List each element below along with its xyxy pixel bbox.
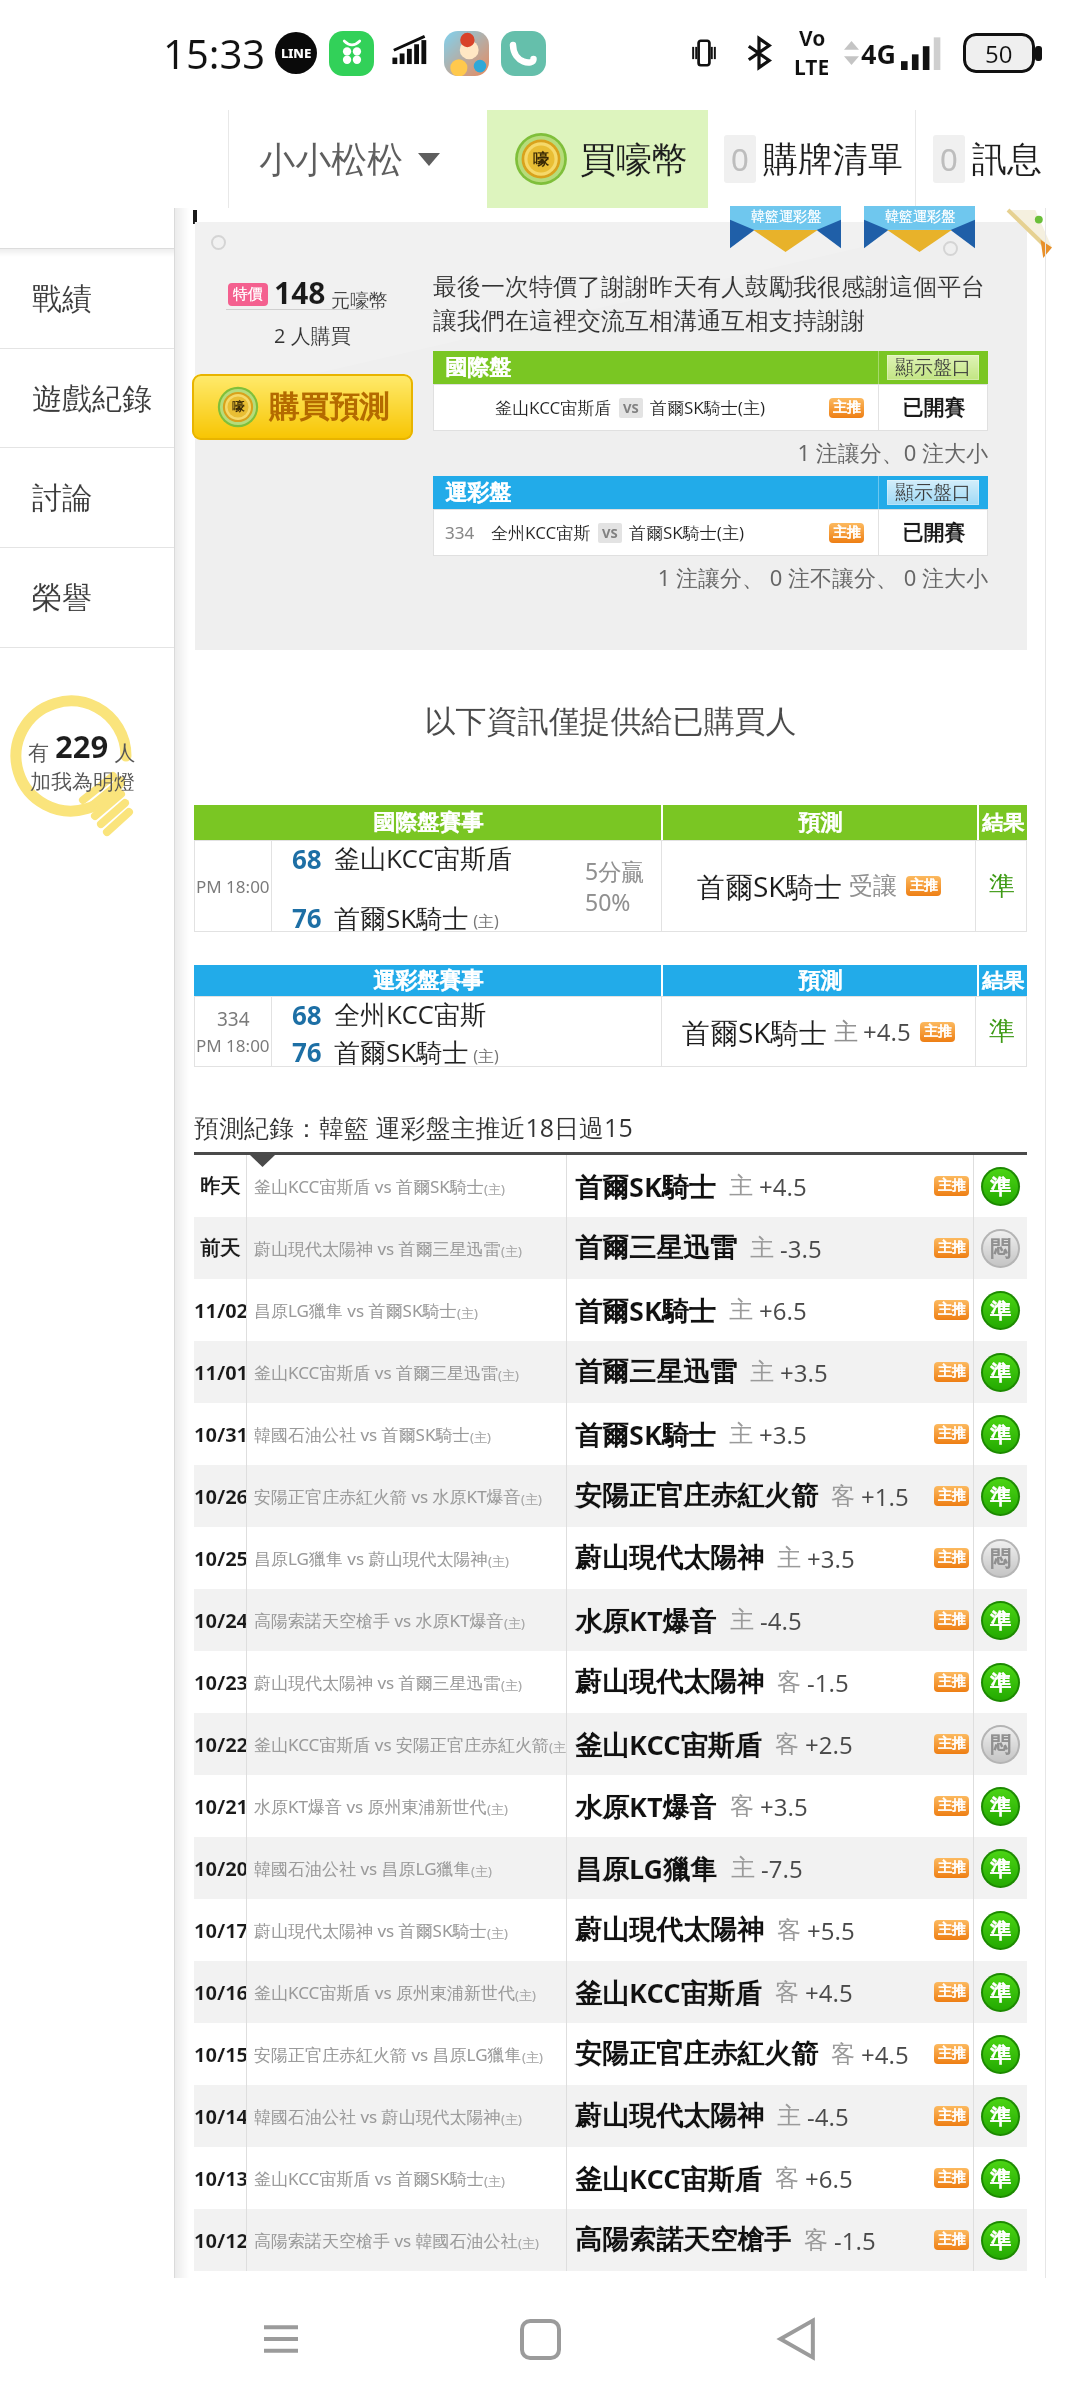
staticText: 主推 — [938, 1239, 966, 1257]
staticText: 首爾三星迅雷 — [575, 1355, 737, 1389]
staticText: 首爾SK騎士 — [575, 1292, 716, 1329]
staticText: 釜山KCC宙斯盾 — [575, 2160, 762, 2197]
button[interactable]: 榮譽 — [0, 548, 174, 648]
staticText: 已開賽 — [902, 520, 965, 546]
staticText: 準 — [990, 1608, 1011, 1634]
staticText: 最後一次特價了謝謝昨天有人鼓勵我很感謝這個平台讓我們在這裡交流互相溝通互相支持謝… — [433, 272, 988, 337]
staticText: 首爾SK騎士 — [334, 900, 469, 932]
button[interactable]: 10/25 — [194, 1527, 1027, 1589]
staticText: 主推 — [938, 1177, 966, 1195]
button[interactable]: 遊戲紀錄 — [0, 349, 174, 448]
button[interactable]: 11/02 — [194, 1279, 1027, 1341]
staticText: 榮譽 — [32, 579, 92, 617]
staticText: 有 — [28, 738, 55, 767]
button[interactable]: 11/01 — [194, 1341, 1027, 1403]
staticText: 68 — [292, 997, 322, 1032]
button[interactable]: 10/23 — [194, 1651, 1027, 1713]
staticText: 客 — [804, 2225, 828, 2255]
button[interactable]: 10/16 — [194, 1961, 1027, 2023]
button[interactable]: 10/21 — [194, 1775, 1027, 1837]
staticText: 高陽索諾天空槍手 — [575, 2223, 791, 2257]
staticText: 準 — [990, 1298, 1011, 1324]
staticText: (主) — [484, 2172, 505, 2190]
staticText: 蔚山現代太陽神 — [575, 1665, 764, 1699]
button[interactable]: 戰績 — [0, 249, 174, 349]
button[interactable]: 10/13 — [194, 2147, 1027, 2209]
staticText: -3.5 — [780, 1232, 822, 1265]
button[interactable]: 討論 — [0, 448, 174, 548]
staticText: 昌原LG獵隼 vs 蔚山現代太陽神 — [254, 1547, 488, 1570]
button[interactable]: 10/24 — [194, 1589, 1027, 1651]
staticText: 準 — [990, 1360, 1011, 1386]
staticText: 76 — [292, 900, 322, 932]
staticText: (主) — [487, 1800, 508, 1818]
staticText: 10/17 — [194, 1917, 246, 1944]
staticText: 國際盤 — [445, 354, 511, 382]
staticText: 主推 — [938, 2107, 966, 2125]
staticText: 10/31 — [194, 1421, 246, 1448]
staticText: 主推 — [910, 877, 938, 895]
button[interactable]: 10/31 — [194, 1403, 1027, 1465]
button[interactable]: 嚎 — [192, 374, 413, 440]
staticText: 主推 — [938, 2045, 966, 2063]
button[interactable]: 0 — [916, 110, 1080, 208]
button[interactable]: 前天 — [194, 1217, 1027, 1279]
button[interactable]: 10/22 — [194, 1713, 1027, 1775]
staticText: 受讓 — [849, 871, 897, 901]
button[interactable]: 10/14 — [194, 2085, 1027, 2147]
staticText: 1 注讓分、 0 注不讓分、 0 注大小 — [433, 562, 988, 592]
staticText: 148 — [274, 272, 326, 313]
staticText: 韓籃運彩盤 — [885, 208, 955, 226]
button[interactable]: 10/17 — [194, 1899, 1027, 1961]
staticText: +5.5 — [807, 1914, 855, 1947]
staticText: 運彩盤賽事 — [373, 967, 483, 995]
staticText: LINE — [281, 44, 312, 62]
button[interactable]: 10/15 — [194, 2023, 1027, 2085]
staticText: +2.5 — [805, 1728, 853, 1761]
button[interactable]: 10/12 — [194, 2209, 1027, 2271]
staticText: +3.5 — [780, 1356, 828, 1389]
button[interactable]: 昨天 — [194, 1155, 1027, 1217]
staticText: 準 — [990, 1670, 1011, 1696]
button[interactable] — [487, 110, 708, 208]
staticText: 主 — [729, 1295, 753, 1325]
staticText: 準 — [990, 1980, 1011, 2006]
staticText: +6.5 — [805, 2162, 853, 2195]
staticText: 已開賽 — [902, 395, 965, 421]
staticText: 0 — [731, 138, 749, 180]
staticText: 準 — [990, 1422, 1011, 1448]
staticText: 主推 — [938, 1549, 966, 1567]
staticText: 首爾SK騎士(主) — [629, 521, 745, 544]
button[interactable]: Home — [485, 2284, 595, 2394]
staticText: 討論 — [32, 479, 92, 517]
button[interactable]: 顯示盤口 — [887, 480, 979, 505]
staticText: -4.5 — [760, 1604, 802, 1637]
staticText: 0 — [940, 138, 958, 180]
staticText: 準 — [990, 2104, 1011, 2130]
button[interactable]: 嚎 — [487, 110, 708, 208]
staticText: 主 — [730, 1605, 754, 1635]
staticText: 主 — [729, 1171, 753, 1201]
staticText: 悶 — [990, 1546, 1011, 1572]
staticText: 2 人購買 — [274, 322, 351, 349]
staticText: 安陽正官庄赤紅火箭 — [575, 2037, 818, 2071]
staticText: 顯示盤口 — [895, 481, 971, 505]
button[interactable]: 10/26 — [194, 1465, 1027, 1527]
button[interactable]: 小小松松 — [229, 110, 487, 208]
staticText: Vo — [799, 24, 826, 53]
staticText: 334 — [217, 1006, 250, 1032]
button[interactable]: 0 — [712, 110, 915, 208]
button[interactable]: 10/20 — [194, 1837, 1027, 1899]
staticText: 特價 — [233, 285, 263, 304]
staticText: 229 — [55, 725, 109, 767]
staticText: 以下資訊僅提供給已購買人 — [194, 702, 1027, 741]
staticText: (主) — [469, 1045, 499, 1067]
staticText: 主推 — [833, 399, 861, 417]
staticText: 10/22 — [194, 1731, 246, 1758]
staticText: (主) — [471, 1862, 492, 1880]
staticText: 10/20 — [194, 1855, 246, 1882]
staticText: 主推 — [938, 1301, 966, 1319]
button[interactable]: Recent apps — [226, 2284, 336, 2394]
button[interactable]: 顯示盤口 — [887, 355, 979, 380]
button[interactable]: Back — [742, 2284, 852, 2394]
